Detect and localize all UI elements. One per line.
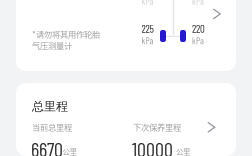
button[interactable]: *请勿将其用作轮胎: [16, 0, 236, 71]
staticText: kPa: [192, 0, 204, 6]
staticText: kPa: [192, 35, 204, 46]
staticText: 公里: [62, 146, 76, 156]
staticText: *请勿将其用作轮胎: [32, 28, 100, 40]
staticText: 10000: [132, 137, 173, 156]
staticText: 220: [192, 22, 205, 35]
staticText: kPa: [141, 35, 153, 46]
staticText: 225: [141, 22, 153, 35]
button[interactable]: 当前总里程: [32, 118, 118, 156]
staticText: kPa: [141, 0, 153, 6]
staticText: 6670: [31, 137, 63, 156]
staticText: 气压测量计: [32, 39, 72, 51]
staticText: 公里: [176, 146, 190, 156]
staticText: 下次保养里程: [133, 121, 181, 133]
staticText: 总里程: [32, 99, 68, 114]
button[interactable]: 下次保养里程: [133, 118, 221, 156]
staticText: 当前总里程: [32, 121, 72, 133]
